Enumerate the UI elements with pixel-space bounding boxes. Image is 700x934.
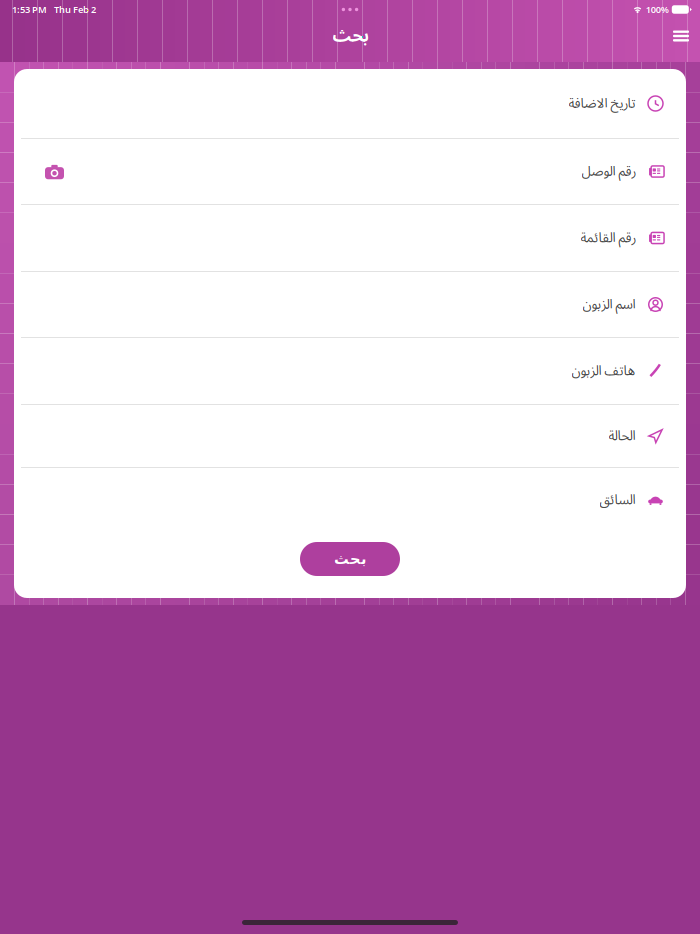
button[interactable]: الحالة <box>14 405 686 467</box>
staticText: 100% <box>646 3 669 16</box>
button[interactable]: السائق <box>14 468 686 532</box>
staticText: رقم الوصل <box>581 157 635 186</box>
staticText: اسم الزبون <box>582 290 635 319</box>
button[interactable]: هاتف الزبون <box>14 338 686 404</box>
button[interactable]: رقم الوصل <box>14 139 686 204</box>
staticText: Thu Feb 2 <box>54 3 96 16</box>
staticText: بحث <box>333 550 366 568</box>
staticText: السائق <box>599 486 635 514</box>
staticText: بحث <box>332 18 368 54</box>
button[interactable]: بحث <box>300 542 400 576</box>
staticText: رقم القائمة <box>580 224 635 252</box>
button[interactable]: اسم الزبون <box>14 272 686 337</box>
button[interactable]: تاريخ الاضافة <box>14 69 686 138</box>
staticText: هاتف الزبون <box>571 357 635 385</box>
staticText: تاريخ الاضافة <box>568 89 635 118</box>
staticText: 1:53 PM <box>12 3 47 16</box>
button[interactable]: رقم القائمة <box>14 205 686 271</box>
button[interactable]: Menu <box>664 23 698 57</box>
staticText: الحالة <box>608 422 635 450</box>
